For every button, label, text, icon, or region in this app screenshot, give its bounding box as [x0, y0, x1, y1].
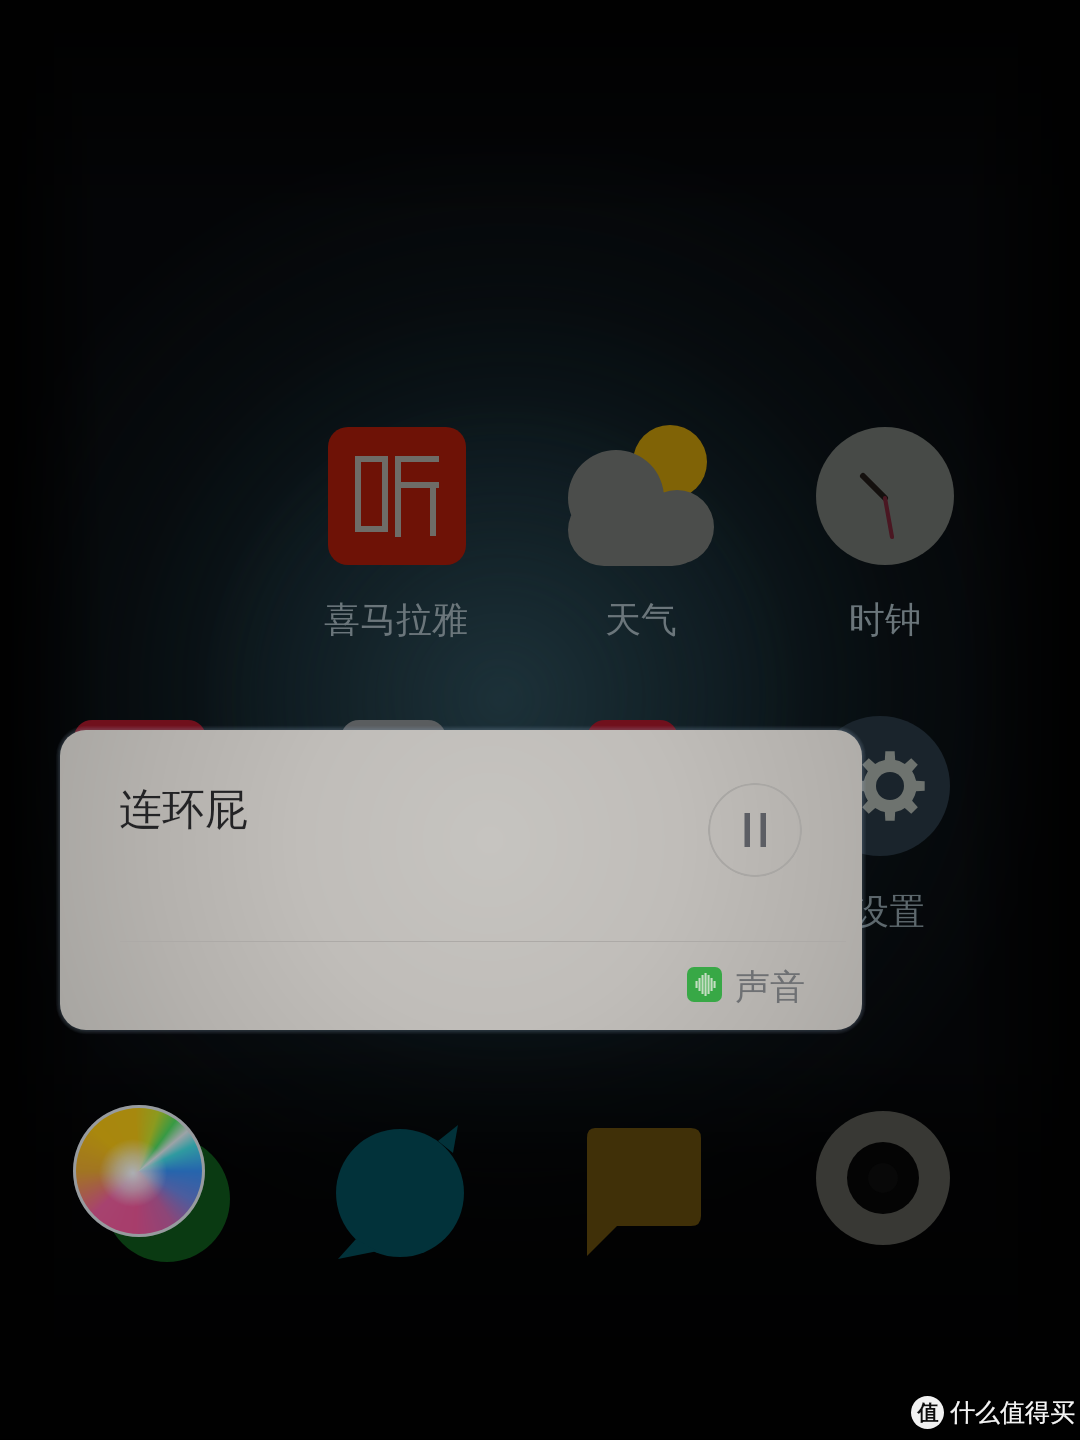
staticText: 天气	[491, 597, 791, 647]
button[interactable]: 设置	[810, 716, 950, 856]
staticText: 设置	[799, 889, 979, 935]
button[interactable]: 短信	[585, 1128, 705, 1258]
staticText: 声音	[735, 965, 805, 1009]
staticText: 喜马拉雅	[246, 597, 546, 647]
button[interactable]: 天气	[560, 420, 720, 580]
button[interactable]: 相册	[73, 1105, 235, 1267]
button[interactable]: 相机	[815, 1110, 952, 1247]
button[interactable]: 暂停	[708, 783, 802, 877]
staticText: 时钟	[735, 597, 1035, 647]
button[interactable]: 助手	[330, 1123, 470, 1263]
button[interactable]: 连环屁	[60, 730, 862, 1030]
staticText: 什么值得买	[950, 1397, 1075, 1428]
button[interactable]: 喜马拉雅	[328, 427, 466, 565]
staticText: 值	[917, 1400, 938, 1426]
staticText: 连环屁	[119, 783, 248, 837]
button[interactable]: 声音	[687, 965, 805, 1009]
button[interactable]: 时钟	[816, 427, 954, 565]
